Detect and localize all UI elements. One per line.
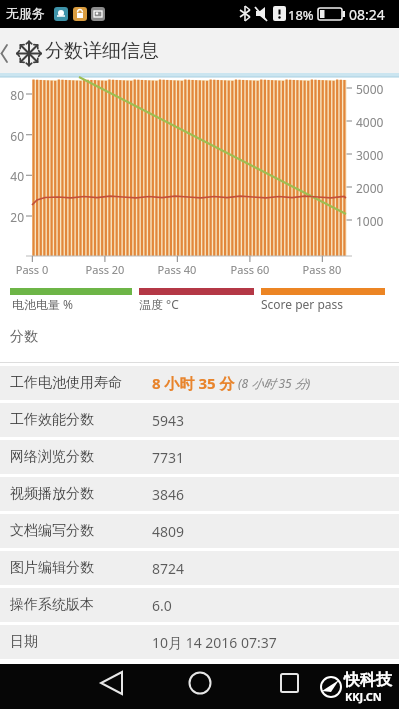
staticText: Pass 80	[298, 262, 346, 277]
staticText: 电池电量 %	[12, 296, 74, 312]
staticText: 4809	[152, 522, 185, 541]
button[interactable]	[85, 664, 137, 709]
staticText: 8724	[152, 559, 185, 578]
staticText: 40	[0, 168, 24, 184]
button[interactable]	[0, 28, 60, 73]
staticText: 日期	[10, 633, 38, 651]
staticText: 网络浏览分数	[10, 448, 94, 466]
staticText: 图片编辑分数	[10, 559, 94, 577]
button[interactable]: 日期	[0, 625, 399, 659]
staticText: 工作电池使用寿命	[10, 374, 122, 392]
staticText: 无服务	[6, 5, 45, 21]
staticText: Pass 20	[81, 262, 129, 277]
staticText: 18%	[288, 6, 314, 24]
staticText: 温度 °C	[139, 296, 179, 312]
staticText: 分数详细信息	[45, 39, 159, 63]
button[interactable]	[263, 664, 315, 709]
button[interactable]: 视频播放分数	[0, 477, 399, 511]
staticText: 3000	[356, 147, 384, 163]
staticText: 文档编写分数	[10, 522, 94, 540]
staticText: KKJ.CN	[345, 689, 382, 704]
button[interactable]: 图片编辑分数	[0, 551, 399, 585]
button[interactable]: 操作系统版本	[0, 588, 399, 622]
button[interactable]	[174, 664, 226, 709]
staticText: 60	[0, 128, 24, 144]
staticText: 分数	[10, 328, 38, 346]
staticText: 20	[0, 209, 24, 225]
staticText: 1000	[356, 213, 384, 229]
staticText: 3846	[152, 485, 185, 504]
staticText: 8 小时 35 分	[152, 373, 235, 393]
staticText: 2000	[356, 180, 384, 196]
staticText: 快科技	[344, 670, 392, 690]
staticText: 4000	[356, 114, 384, 130]
button[interactable]: 网络浏览分数	[0, 440, 399, 474]
button[interactable]: 工作电池使用寿命	[0, 366, 399, 400]
staticText: 5943	[152, 411, 185, 430]
staticText: 7731	[152, 448, 185, 467]
staticText: (8 小时 35 分)	[235, 375, 311, 391]
staticText: Pass 0	[8, 262, 56, 277]
staticText: 5000	[356, 81, 384, 97]
staticText: 80	[0, 87, 24, 103]
staticText: 工作效能分数	[10, 411, 94, 429]
staticText: Pass 60	[226, 262, 274, 277]
staticText: 6.0	[152, 596, 172, 615]
button[interactable]: 文档编写分数	[0, 514, 399, 548]
staticText: 视频播放分数	[10, 485, 94, 503]
button[interactable]: 工作效能分数	[0, 403, 399, 437]
staticText: 10月 14 2016 07:37	[152, 633, 277, 652]
staticText: 08:24	[349, 5, 385, 24]
staticText: 操作系统版本	[10, 596, 94, 614]
staticText: Score per pass	[261, 296, 344, 312]
staticText: Pass 40	[153, 262, 201, 277]
